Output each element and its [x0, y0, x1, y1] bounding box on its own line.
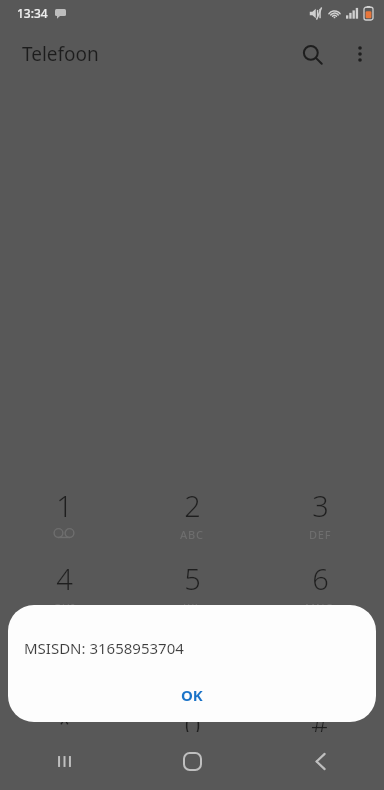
staticText: JKL — [183, 600, 202, 615]
button[interactable]: 7 — [0, 626, 128, 699]
button[interactable]: Recent apps — [0, 732, 128, 790]
button[interactable]: More options — [336, 30, 384, 78]
staticText: MSISDN: 31658953704 — [24, 638, 184, 658]
staticText: ABC — [180, 527, 204, 542]
staticText: 5 — [184, 559, 201, 598]
staticText: 0 — [184, 705, 201, 744]
button[interactable]: 6 — [256, 553, 384, 626]
staticText: # — [311, 705, 329, 742]
staticText: 7 — [56, 632, 73, 671]
button[interactable]: # — [256, 699, 384, 772]
staticText: 6 — [312, 559, 329, 598]
button[interactable]: OK — [132, 674, 252, 716]
button[interactable]: 8 — [128, 626, 256, 699]
staticText: DEF — [309, 527, 332, 542]
staticText: + — [188, 746, 197, 765]
staticText: GHI — [53, 600, 76, 615]
button[interactable]: Back — [256, 732, 384, 790]
button[interactable]: 3 — [256, 480, 384, 553]
staticText: MNO — [305, 600, 335, 615]
staticText: OK — [181, 685, 203, 705]
button[interactable]: Search — [288, 30, 336, 78]
button[interactable]: 2 — [128, 480, 256, 553]
staticText: 2 — [184, 486, 201, 525]
staticText: Telefoon — [22, 41, 99, 67]
button[interactable]: 5 — [128, 553, 256, 626]
staticText: 1 — [56, 486, 73, 525]
button[interactable]: 9 — [256, 626, 384, 699]
button[interactable]: Home — [128, 732, 256, 790]
button[interactable]: 0 — [128, 699, 256, 772]
staticText: 13:34 — [17, 5, 48, 21]
button[interactable]: * — [0, 699, 128, 772]
staticText: 4 — [56, 559, 73, 598]
staticText: 3 — [312, 486, 329, 525]
button[interactable]: 1 — [0, 480, 128, 553]
button[interactable]: 4 — [0, 553, 128, 626]
staticText: * — [57, 705, 72, 742]
